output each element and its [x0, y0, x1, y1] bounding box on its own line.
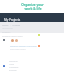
staticText: Projects — [2, 31, 11, 34]
staticText: Errands — [9, 69, 17, 72]
staticText: Shopping — [9, 66, 19, 69]
staticText: Work — [9, 63, 15, 66]
staticText: Sync with team — [10, 48, 26, 51]
staticText: Organize your — [21, 3, 44, 7]
staticText: work & life — [24, 7, 42, 11]
staticText: Review design mockups — [10, 44, 37, 47]
staticText: Personal — [9, 60, 18, 63]
staticText: Product launch plan — [2, 35, 23, 38]
button[interactable]: My Projects — [0, 13, 64, 22]
staticText: Upcoming — [2, 27, 13, 30]
staticText: My Projects — [4, 18, 21, 22]
staticText: Today · 5 tasks — [2, 24, 21, 27]
